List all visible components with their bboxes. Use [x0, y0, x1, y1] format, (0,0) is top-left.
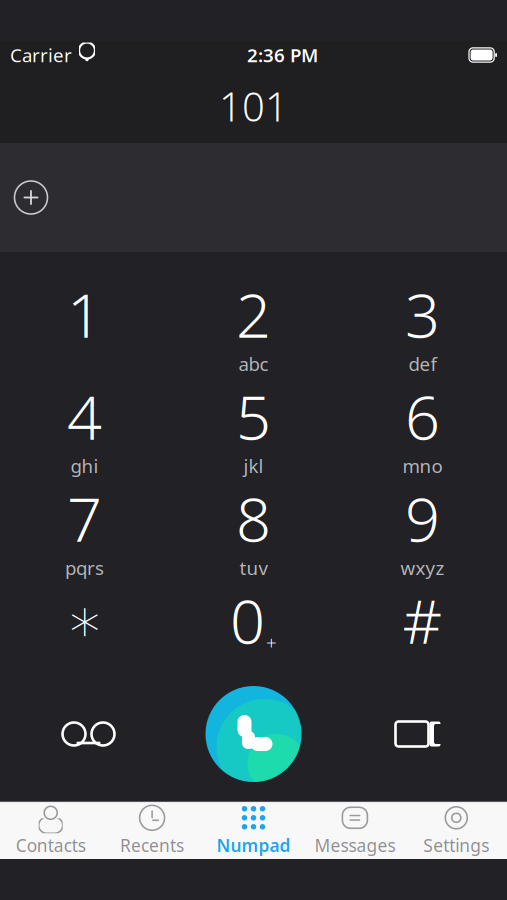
staticText: 2:36 PM — [247, 43, 318, 67]
staticText: Settings — [423, 834, 489, 857]
staticText: jkl — [243, 453, 263, 478]
button[interactable]: 2 — [169, 270, 338, 372]
button[interactable]: Call — [205, 686, 301, 782]
staticText: abc — [238, 351, 268, 376]
staticText: 8 — [236, 477, 271, 559]
button[interactable]: 5 — [169, 372, 338, 474]
staticText: 5 — [236, 375, 271, 457]
staticText: ghi — [70, 453, 98, 478]
staticText: def — [408, 351, 436, 376]
button[interactable]: Messages — [304, 802, 406, 859]
staticText: Numpad — [216, 834, 290, 857]
button[interactable]: 7 — [0, 474, 169, 576]
staticText: 101 — [219, 79, 288, 132]
button[interactable]: 4 — [0, 372, 169, 474]
staticText: # — [402, 579, 442, 661]
staticText: 1 — [67, 273, 102, 355]
staticText: 2 — [236, 273, 271, 355]
staticText: 7 — [67, 477, 102, 559]
staticText: Messages — [314, 834, 395, 857]
staticText: pqrs — [65, 555, 104, 580]
staticText: 3 — [405, 273, 440, 355]
staticText: Recents — [120, 834, 184, 857]
staticText: 6 — [405, 375, 440, 457]
button[interactable]: # — [338, 576, 507, 678]
button[interactable]: 8 — [169, 474, 338, 576]
button[interactable]: 9 — [338, 474, 507, 576]
staticText: wxyz — [400, 555, 444, 580]
button[interactable]: ∗ — [0, 576, 169, 678]
staticText: mno — [402, 453, 442, 478]
button[interactable]: Add number — [9, 175, 53, 219]
button[interactable]: 3 — [338, 270, 507, 372]
staticText: 0 — [230, 579, 265, 661]
staticText: + — [266, 630, 277, 655]
button[interactable]: Numpad — [203, 802, 304, 859]
staticText: Contacts — [16, 834, 86, 857]
staticText: Carrier — [10, 43, 72, 67]
button[interactable]: Contacts — [0, 802, 101, 859]
button[interactable]: 1 — [0, 270, 169, 372]
button[interactable]: Settings — [406, 802, 507, 859]
button[interactable]: Recents — [101, 802, 203, 859]
button[interactable]: Voicemail — [6, 686, 171, 782]
staticText: 9 — [405, 477, 440, 559]
staticText: ∗ — [65, 585, 103, 655]
button[interactable]: Video call — [336, 686, 501, 782]
button[interactable]: 6 — [338, 372, 507, 474]
staticText: 4 — [67, 375, 102, 457]
button[interactable]: 0 — [169, 576, 338, 678]
staticText: tuv — [239, 555, 267, 580]
